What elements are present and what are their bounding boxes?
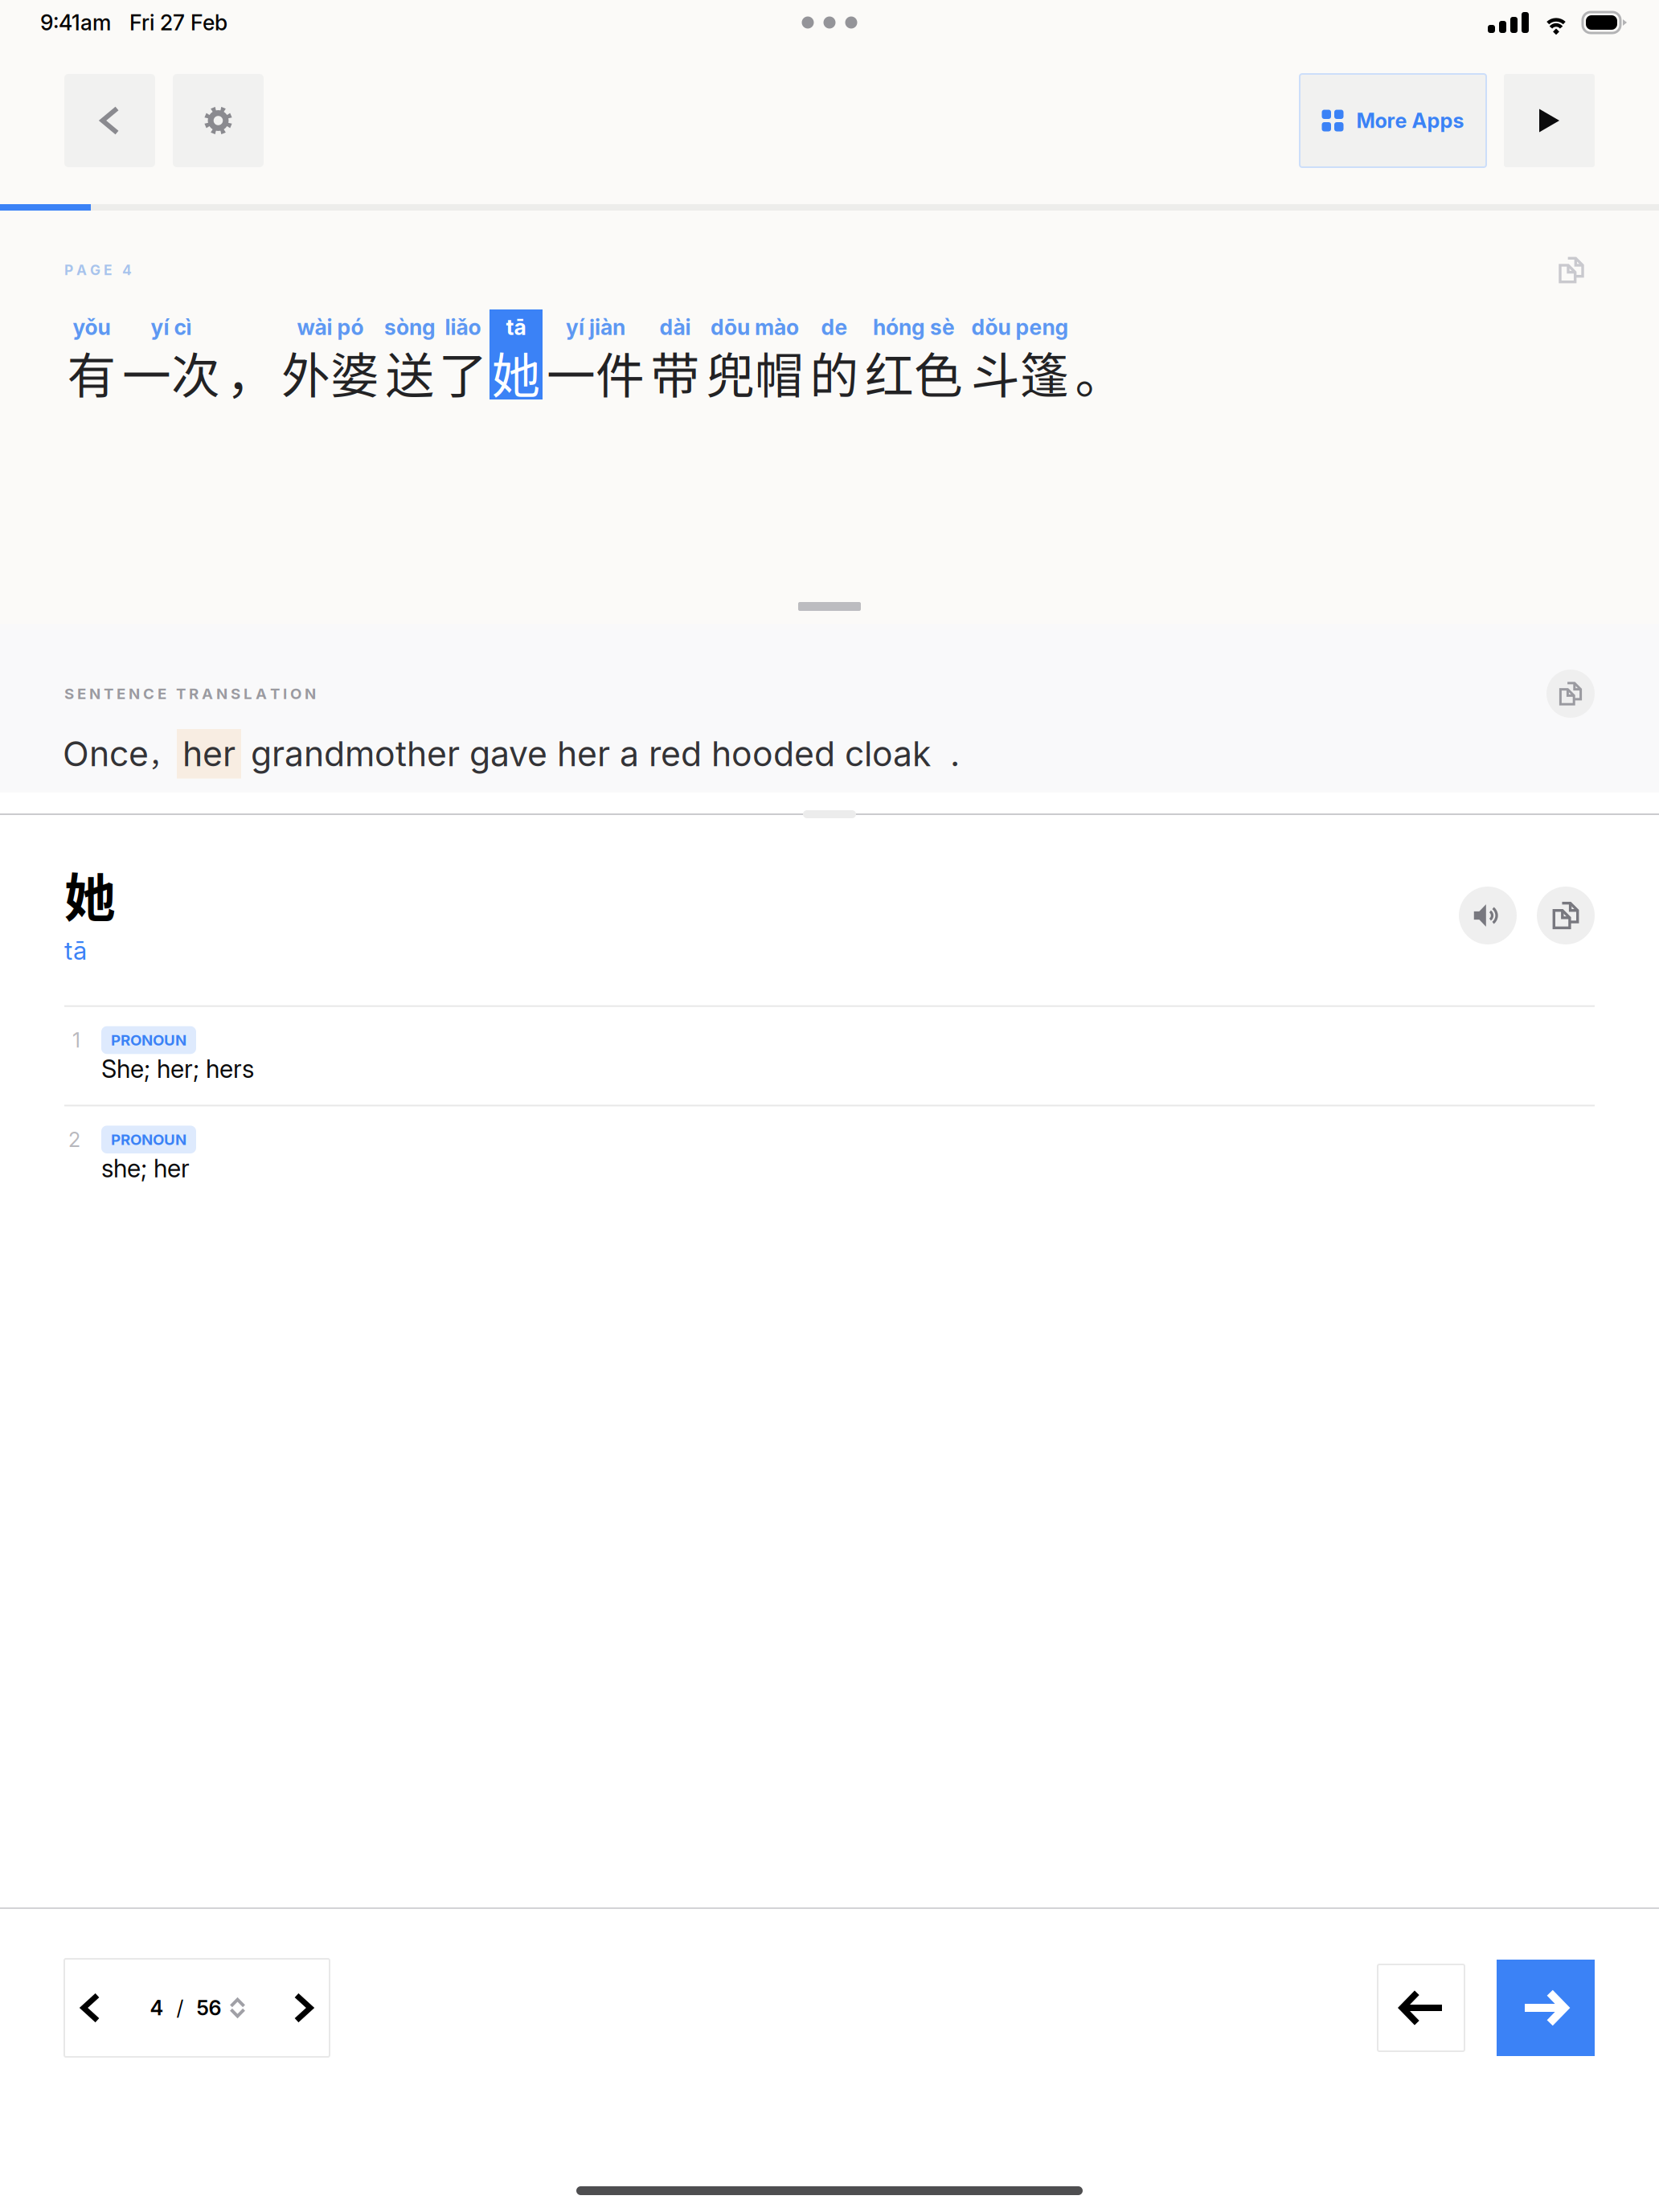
staticText: sòng: [384, 314, 436, 340]
staticText: .: [931, 733, 960, 775]
button[interactable]: Back: [64, 74, 155, 167]
staticText: Fri 27 Feb: [129, 10, 227, 36]
staticText: PRONOUN: [111, 1031, 186, 1049]
staticText: 2: [68, 1127, 80, 1152]
staticText: 9:41am: [40, 10, 111, 36]
button[interactable]: Copy word: [1537, 887, 1595, 944]
staticText: 送: [385, 337, 434, 407]
staticText: 的: [810, 337, 859, 407]
staticText: yí cì: [151, 314, 192, 340]
staticText: liǎo: [445, 314, 481, 340]
button[interactable]: More Apps: [1300, 74, 1486, 167]
button[interactable]: Copy translation: [1546, 670, 1595, 718]
staticText: 4: [150, 1996, 164, 2020]
staticText: yí jiàn: [566, 314, 625, 340]
button[interactable]: Copy sentence: [1555, 254, 1587, 286]
staticText: /: [176, 1996, 184, 2020]
staticText: 斗篷: [971, 337, 1069, 407]
staticText: de: [821, 314, 848, 340]
staticText: Once: [63, 733, 149, 775]
staticText: 外婆: [281, 337, 379, 407]
staticText: wài pó: [297, 314, 364, 340]
staticText: grandmother gave her a red hooded cloak: [241, 733, 931, 775]
button[interactable]: Play: [1504, 74, 1595, 167]
staticText: dōu mào: [711, 314, 799, 340]
staticText: 56: [197, 1996, 221, 2020]
staticText: 。: [1075, 337, 1124, 407]
staticText: dǒu peng: [971, 314, 1069, 340]
staticText: 有: [67, 337, 116, 407]
staticText: 一次: [122, 337, 220, 407]
staticText: P A G E 4: [64, 262, 132, 279]
staticText: 一件: [547, 337, 645, 407]
staticText: she; her: [101, 1153, 190, 1183]
staticText: hóng sè: [873, 314, 955, 340]
button[interactable]: Play pronunciation: [1459, 887, 1517, 944]
staticText: PRONOUN: [111, 1130, 186, 1149]
staticText: S E N T E N C E T R A N S L A T I O N: [64, 685, 316, 703]
staticText: She; her; hers: [101, 1054, 254, 1084]
staticText: yǒu: [73, 314, 111, 340]
staticText: 兜帽: [706, 337, 804, 407]
staticText: 她: [492, 337, 541, 407]
button[interactable]: Settings: [173, 74, 264, 167]
staticText: dài: [660, 314, 691, 340]
staticText: ，: [226, 337, 275, 407]
button[interactable]: Next: [1497, 1960, 1595, 2056]
staticText: 她: [64, 857, 116, 931]
staticText: tā: [506, 314, 526, 340]
button[interactable]: 4: [64, 1959, 330, 2057]
staticText: her: [182, 733, 236, 775]
staticText: ，: [149, 734, 177, 774]
staticText: 带: [651, 337, 700, 407]
staticText: 红色: [865, 337, 963, 407]
button[interactable]: Previous: [1378, 1964, 1464, 2051]
staticText: 1: [72, 1028, 80, 1052]
staticText: More Apps: [1356, 108, 1464, 133]
staticText: tā: [64, 935, 87, 966]
staticText: 了: [438, 337, 487, 407]
